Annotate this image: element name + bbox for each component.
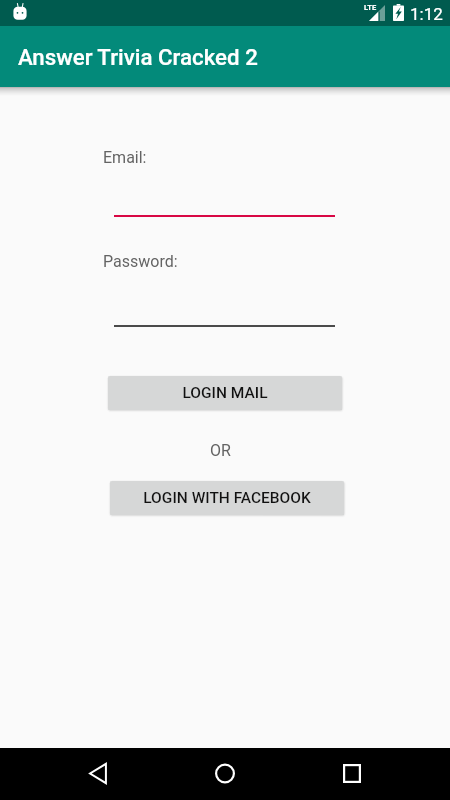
button[interactable]: Password input field bbox=[114, 295, 335, 326]
staticText: Answer Trivia Cracked 2 bbox=[18, 44, 258, 70]
staticText: LOGIN WITH FACEBOOK bbox=[143, 489, 311, 507]
staticText: LTE bbox=[364, 3, 377, 12]
staticText: OR bbox=[210, 441, 231, 460]
button[interactable]: Email input field bbox=[114, 185, 335, 217]
staticText: 1:12 bbox=[410, 4, 443, 24]
staticText: Email: bbox=[103, 148, 147, 167]
button[interactable]: LOGIN MAIL bbox=[108, 376, 342, 410]
staticText: LOGIN MAIL bbox=[182, 384, 268, 402]
button[interactable]: Recent apps bbox=[343, 764, 361, 783]
staticText: Password: bbox=[103, 252, 178, 271]
button[interactable]: Home bbox=[215, 763, 235, 784]
button[interactable]: Back bbox=[89, 763, 107, 784]
button[interactable]: LOGIN WITH FACEBOOK bbox=[110, 481, 344, 515]
